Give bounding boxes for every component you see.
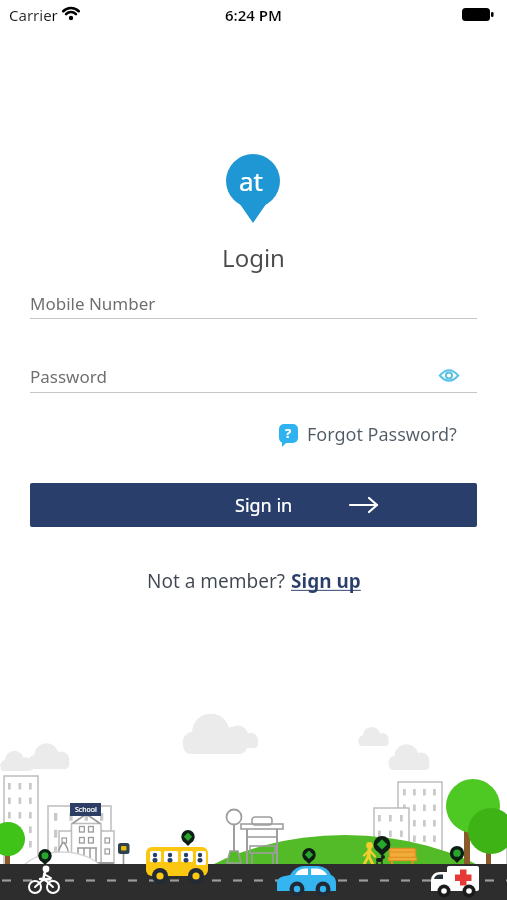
button[interactable]: ?: [279, 421, 457, 448]
staticText: at: [239, 163, 263, 198]
staticText: ?: [285, 424, 292, 442]
button[interactable]: Mobile Number: [30, 292, 477, 319]
staticText: Not a member?: [147, 568, 291, 594]
staticText: Sign in: [235, 493, 293, 518]
staticText: Login: [0, 241, 507, 274]
button[interactable]: Sign in: [30, 483, 477, 527]
staticText: Forgot Password?: [307, 422, 457, 447]
button[interactable]: [439, 369, 459, 382]
staticText: School: [75, 805, 97, 815]
staticText: Carrier: [9, 5, 58, 25]
staticText: Password: [30, 365, 107, 388]
button[interactable]: Password: [30, 365, 477, 392]
button[interactable]: Sign up: [291, 568, 361, 594]
staticText: Mobile Number: [30, 292, 156, 315]
staticText: 6:24 PM: [0, 5, 507, 25]
